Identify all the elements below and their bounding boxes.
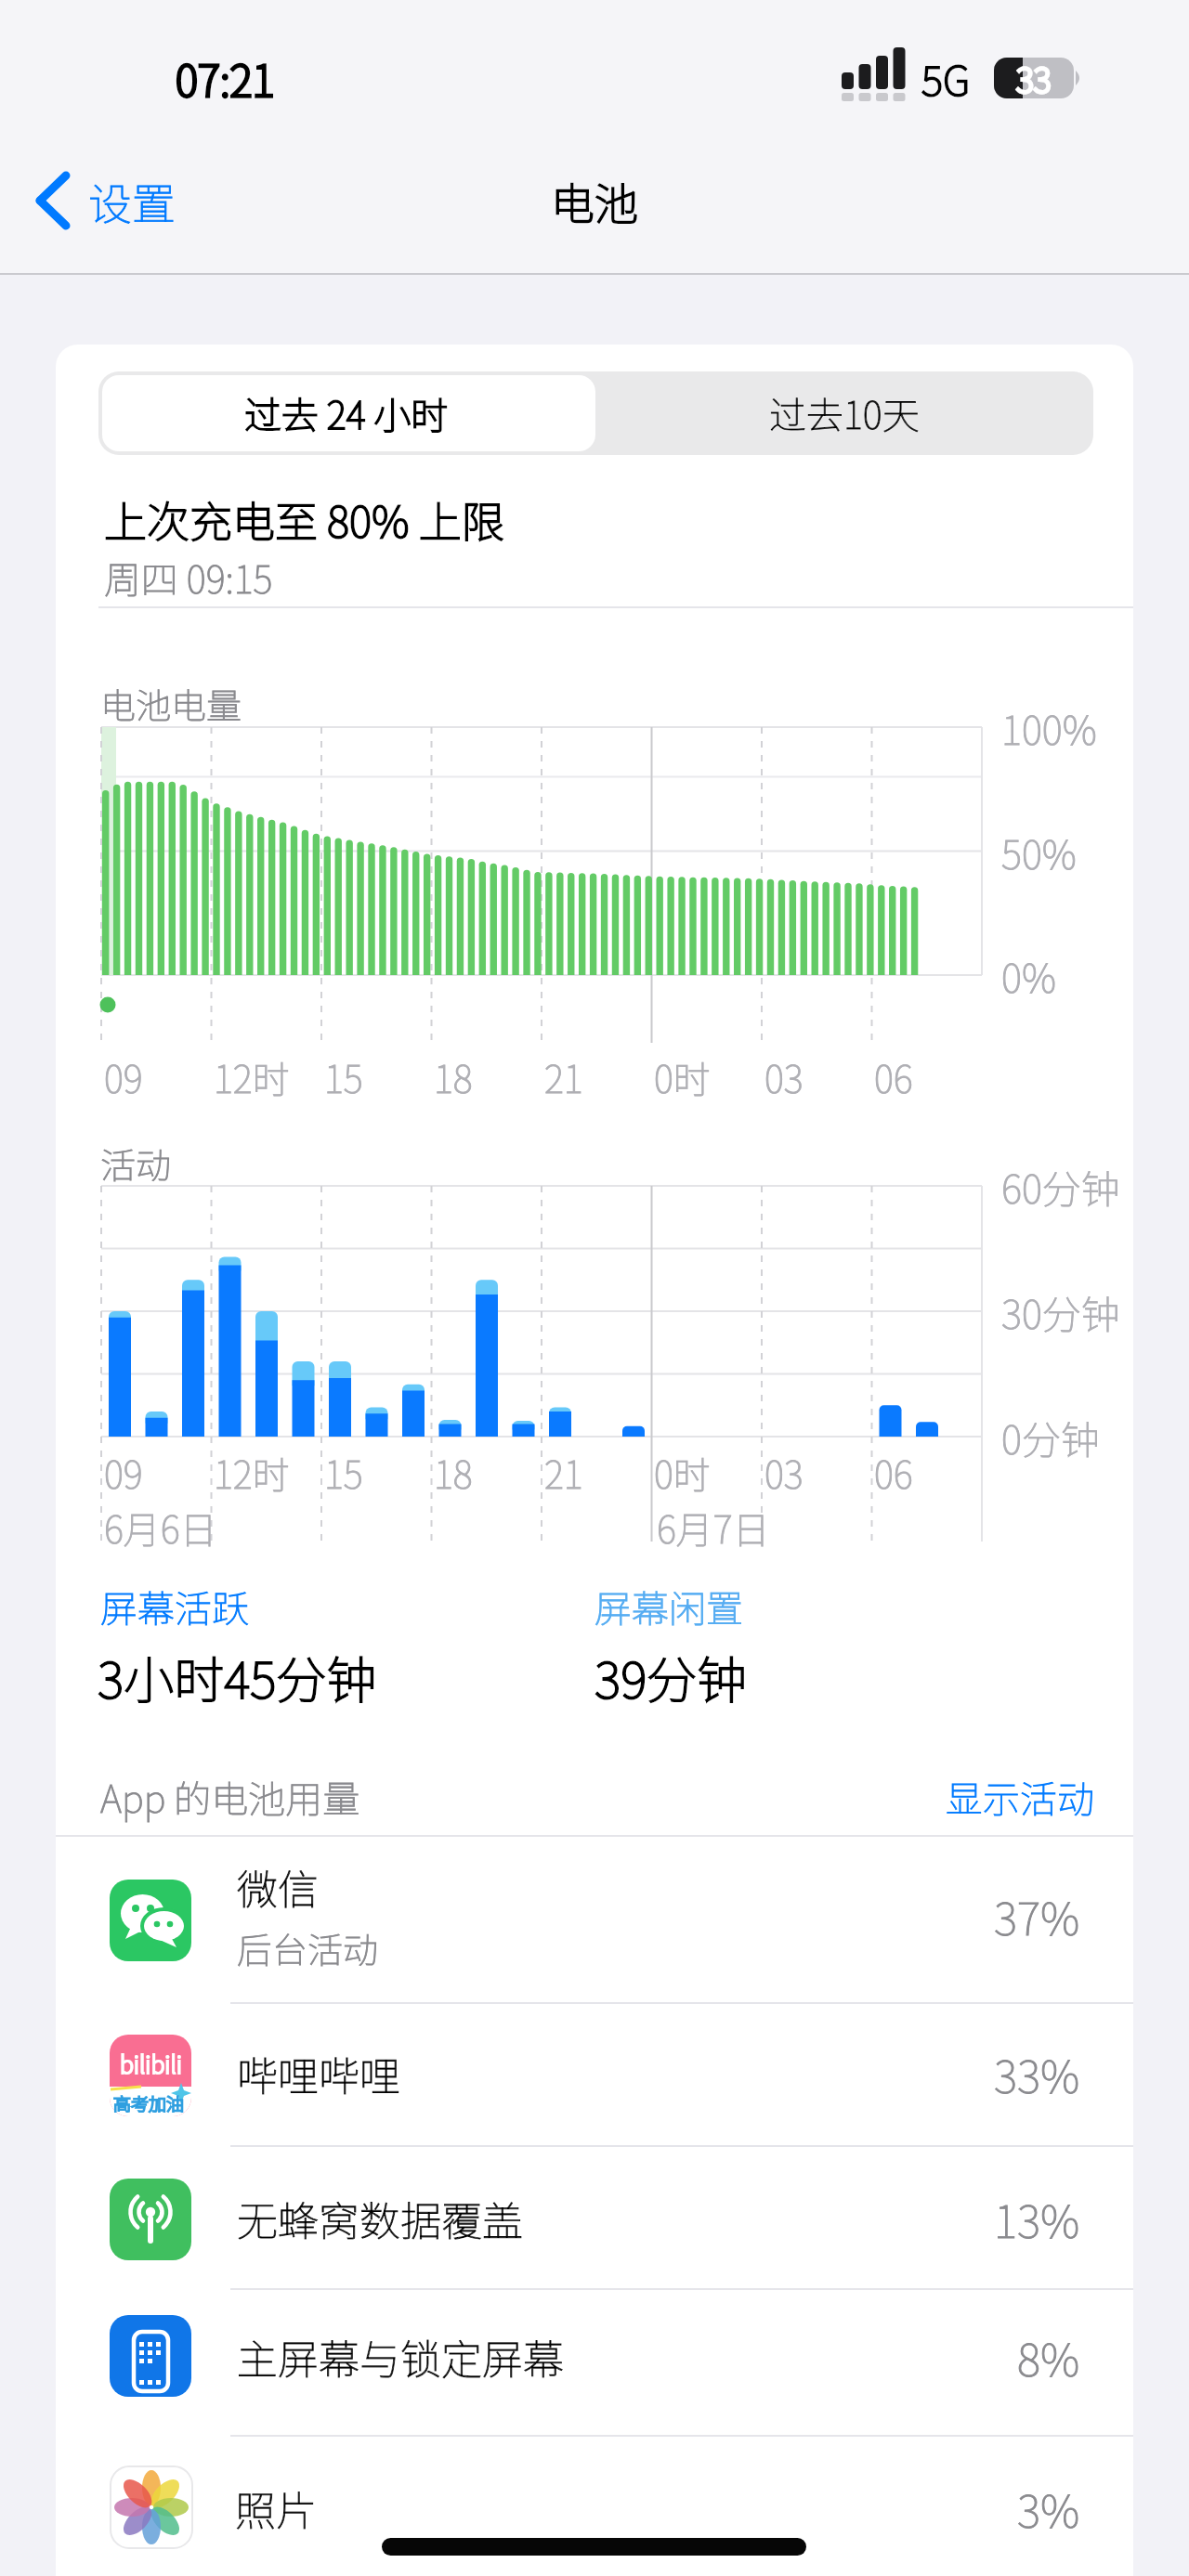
staticText: 0时 <box>654 1446 711 1500</box>
staticText: 周四 09:15 <box>104 551 273 605</box>
button[interactable] <box>28 167 195 232</box>
staticText: 06 <box>874 1050 913 1104</box>
staticText: App 的电池用量 <box>100 1770 360 1824</box>
staticText: 过去10天 <box>769 386 920 440</box>
staticText: 50% <box>1001 824 1077 880</box>
staticText: 屏幕活跃 <box>100 1580 249 1633</box>
staticText: 6月7日 <box>657 1501 770 1555</box>
staticText: 30分钟 <box>1001 1283 1120 1340</box>
button[interactable] <box>595 375 1093 451</box>
staticText: 33 <box>1016 54 1052 102</box>
staticText: 21 <box>544 1446 583 1500</box>
staticText: 09 <box>104 1446 143 1500</box>
staticText: 0% <box>1001 947 1056 1004</box>
staticText: 主屏幕与锁定屏幕 <box>237 2327 564 2387</box>
staticText: 06 <box>874 1050 913 1104</box>
staticText: 3小时45分钟 <box>98 1640 377 1712</box>
staticText: 09 <box>104 1050 143 1104</box>
button[interactable] <box>929 1764 1101 1829</box>
staticText: 电池 <box>551 169 638 232</box>
staticText: 照片 <box>235 2478 317 2538</box>
staticText: 后台活动 <box>237 1922 379 1973</box>
button[interactable] <box>56 2436 1133 2576</box>
staticText: 03 <box>764 1050 804 1104</box>
staticText: 60分钟 <box>1001 1158 1120 1215</box>
button[interactable] <box>56 2003 1133 2146</box>
staticText: 屏幕闲置 <box>594 1580 743 1633</box>
button[interactable] <box>102 375 595 451</box>
staticText: 无蜂窝数据覆盖 <box>237 2189 523 2248</box>
staticText: 0% <box>1001 947 1056 1004</box>
staticText: 过去10天 <box>769 386 920 440</box>
staticText: 微信 <box>237 1857 319 1917</box>
staticText: 后台活动 <box>237 1922 379 1973</box>
staticText: 6月7日 <box>657 1501 770 1555</box>
staticText: 03 <box>764 1446 804 1500</box>
staticText: 12时 <box>214 1050 290 1104</box>
staticText: 33 <box>1016 54 1052 102</box>
staticText: 哔哩哔哩 <box>237 2044 400 2103</box>
staticText: 屏幕闲置 <box>594 1580 743 1633</box>
staticText: 周四 09:15 <box>104 551 273 605</box>
staticText: 设置 <box>88 169 176 232</box>
staticText: 屏幕活跃 <box>100 1580 249 1633</box>
staticText: 15 <box>324 1050 363 1104</box>
staticText: 07:21 <box>176 47 275 110</box>
staticText: 0时 <box>654 1050 711 1104</box>
staticText: 33% <box>994 2041 1080 2106</box>
staticText: 显示活动 <box>946 1770 1094 1824</box>
staticText: 60分钟 <box>1001 1158 1120 1215</box>
staticText: App 的电池用量 <box>100 1770 360 1824</box>
staticText: 12时 <box>214 1050 290 1104</box>
staticText: 设置 <box>88 169 176 232</box>
staticText: 37% <box>994 1883 1080 1948</box>
staticText: 21 <box>544 1050 583 1104</box>
staticText: 6月6日 <box>104 1501 217 1555</box>
staticText: bilibili <box>120 2047 182 2080</box>
staticText: 15 <box>324 1446 363 1500</box>
staticText: 100% <box>1001 699 1097 756</box>
staticText: 0时 <box>654 1446 711 1500</box>
staticText: 8% <box>1017 2324 1080 2389</box>
staticText: bilibili <box>120 2047 182 2080</box>
staticText: 显示活动 <box>946 1770 1094 1824</box>
staticText: 18 <box>434 1446 473 1500</box>
button[interactable] <box>56 2147 1133 2290</box>
staticText: 30分钟 <box>1001 1283 1120 1340</box>
staticText: 过去 24 小时 <box>244 386 449 440</box>
staticText: 06 <box>874 1446 913 1500</box>
staticText: 8% <box>1017 2324 1080 2389</box>
staticText: 5G <box>921 48 971 108</box>
staticText: 活动 <box>100 1138 172 1189</box>
staticText: 13% <box>994 2186 1080 2251</box>
staticText: 03 <box>764 1446 804 1500</box>
staticText: 活动 <box>100 1138 172 1189</box>
button[interactable] <box>56 1844 1133 1987</box>
staticText: 3% <box>1017 2476 1080 2541</box>
staticText: 100% <box>1001 699 1097 756</box>
staticText: 高考加油 <box>113 2090 185 2116</box>
staticText: 07:21 <box>176 47 275 110</box>
staticText: 电池 <box>551 169 638 232</box>
staticText: 3% <box>1017 2476 1080 2541</box>
button[interactable] <box>56 2285 1133 2428</box>
staticText: 39分钟 <box>594 1640 748 1712</box>
staticText: 高考加油 <box>113 2090 185 2116</box>
staticText: 上次充电至 80% 上限 <box>104 488 504 551</box>
staticText: 0时 <box>654 1050 711 1104</box>
staticText: 21 <box>544 1050 583 1104</box>
staticText: 上次充电至 80% 上限 <box>104 488 504 551</box>
staticText: 13% <box>994 2186 1080 2251</box>
staticText: 12时 <box>214 1446 290 1500</box>
staticText: 哔哩哔哩 <box>237 2044 400 2103</box>
staticText: 0分钟 <box>1001 1409 1100 1465</box>
staticText: 18 <box>434 1050 473 1104</box>
staticText: 37% <box>994 1883 1080 1948</box>
staticText: 39分钟 <box>594 1640 748 1712</box>
staticText: 电池电量 <box>100 678 242 729</box>
staticText: 0分钟 <box>1001 1409 1100 1465</box>
staticText: 3小时45分钟 <box>98 1640 377 1712</box>
staticText: 过去 24 小时 <box>244 386 449 440</box>
staticText: 电池电量 <box>100 678 242 729</box>
staticText: 50% <box>1001 824 1077 880</box>
